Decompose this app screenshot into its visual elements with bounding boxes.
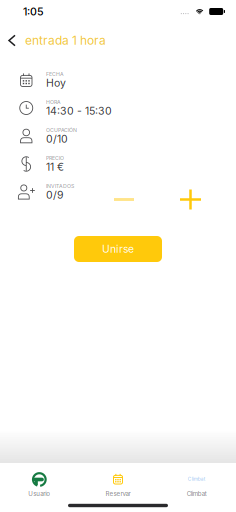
staticText: 1:05: [23, 5, 44, 18]
staticText: Climbat: [187, 490, 207, 497]
staticText: Usuario: [28, 490, 50, 497]
staticText: Climbat: [188, 476, 206, 482]
staticText: Unirse: [102, 243, 134, 255]
staticText: 0/9: [46, 189, 64, 201]
button[interactable]: Reservar: [79, 463, 157, 499]
staticText: INVITADOS: [46, 183, 74, 189]
button[interactable]: Increase guests: [174, 189, 207, 209]
button[interactable]: Decrease guests: [107, 189, 141, 209]
staticText: Hoy: [46, 77, 66, 89]
staticText: PRECIO: [46, 155, 64, 161]
staticText: HORA: [46, 99, 61, 105]
staticText: 0/10: [46, 133, 68, 145]
button[interactable]: Usuario: [0, 463, 79, 499]
staticText: OCUPACIÓN: [46, 127, 77, 133]
button[interactable]: Unirse: [74, 236, 162, 262]
staticText: 11 €: [46, 161, 64, 173]
staticText: Reservar: [105, 490, 130, 497]
staticText: 14:30 - 15:30: [46, 105, 112, 117]
button[interactable]: Back: [0, 28, 19, 53]
staticText: entrada 1 hora: [25, 33, 106, 48]
staticText: FECHA: [46, 71, 64, 77]
button[interactable]: Climbat: [157, 463, 236, 499]
